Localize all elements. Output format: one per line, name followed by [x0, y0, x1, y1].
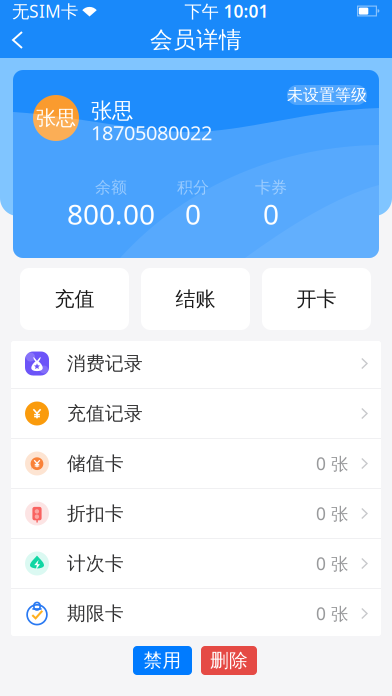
button[interactable]: 未设置等级: [287, 85, 367, 105]
staticText: 消费记录: [67, 352, 143, 375]
button[interactable]: 消费记录: [11, 339, 381, 388]
staticText: 删除: [210, 649, 248, 672]
staticText: 禁用: [143, 649, 181, 672]
button[interactable]: 折扣卡: [11, 489, 381, 538]
staticText: 计次卡: [67, 552, 124, 575]
button[interactable]: 期限卡: [11, 589, 381, 638]
staticText: 张思: [91, 98, 133, 124]
staticText: 0: [263, 195, 279, 233]
staticText: 下午 10:01: [184, 0, 268, 22]
button[interactable]: 计次卡: [11, 539, 381, 588]
staticText: 无SIM卡: [12, 0, 78, 22]
staticText: 积分: [177, 178, 209, 197]
staticText: 800.00: [67, 195, 155, 233]
staticText: 储值卡: [67, 452, 124, 475]
button[interactable]: 充值记录: [11, 389, 381, 438]
staticText: 0: [185, 195, 201, 233]
staticText: 0 张: [316, 552, 348, 575]
staticText: 会员详情: [150, 26, 242, 54]
button[interactable]: 充值: [20, 268, 129, 330]
staticText: 余额: [95, 178, 127, 197]
staticText: 0 张: [316, 452, 348, 475]
button[interactable]: 结账: [141, 268, 250, 330]
staticText: 0 张: [316, 602, 348, 625]
button[interactable]: 开卡: [262, 268, 371, 330]
staticText: 充值记录: [67, 402, 143, 425]
staticText: 期限卡: [67, 602, 124, 625]
staticText: 折扣卡: [67, 502, 124, 525]
staticText: 卡券: [255, 178, 287, 197]
staticText: 未设置等级: [287, 85, 367, 105]
staticText: 充值: [54, 287, 94, 311]
staticText: 结账: [175, 287, 215, 311]
staticText: 0 张: [316, 502, 348, 525]
staticText: 18705080022: [91, 119, 212, 146]
button[interactable]: 禁用: [133, 646, 192, 675]
staticText: 开卡: [296, 287, 336, 311]
button[interactable]: 储值卡: [11, 439, 381, 488]
button[interactable]: 删除: [201, 646, 257, 675]
button[interactable]: 返回: [0, 22, 44, 58]
staticText: 张思: [36, 106, 76, 130]
